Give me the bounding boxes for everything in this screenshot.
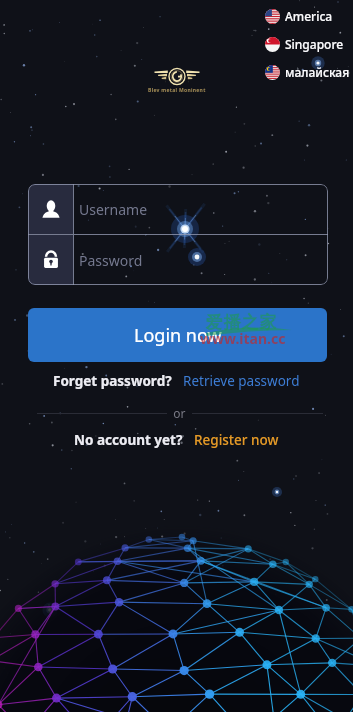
other: Logo <box>141 66 213 94</box>
button[interactable]: Password <box>28 235 328 285</box>
staticText: or <box>167 405 192 421</box>
button[interactable]: Register now <box>194 431 279 449</box>
button[interactable]: Singapore <box>263 30 346 58</box>
button[interactable]: Login now <box>28 308 327 362</box>
staticText: Username <box>79 200 148 219</box>
staticText: Forget password? <box>53 372 172 390</box>
button[interactable]: No account yet? <box>74 431 183 449</box>
other: Password <box>40 249 62 271</box>
other: Username <box>40 198 62 220</box>
staticText: Register now <box>194 431 279 449</box>
staticText: Login now <box>134 323 222 348</box>
staticText: 爱播之家 <box>205 312 277 333</box>
staticText: www.itan.cc <box>200 329 286 348</box>
button[interactable]: Username <box>28 184 328 234</box>
staticText: Retrieve password <box>183 372 300 390</box>
staticText: малайская <box>285 64 350 80</box>
staticText: Singapore <box>285 36 344 52</box>
button[interactable]: малайская <box>263 58 352 86</box>
staticText: Password <box>79 251 143 270</box>
staticText: Blev metal Moninent <box>148 87 206 94</box>
button[interactable]: Forget password? <box>53 372 172 390</box>
button[interactable]: America <box>263 2 335 30</box>
button[interactable]: Retrieve password <box>183 372 300 390</box>
staticText: No account yet? <box>74 431 183 449</box>
staticText: America <box>285 8 333 24</box>
